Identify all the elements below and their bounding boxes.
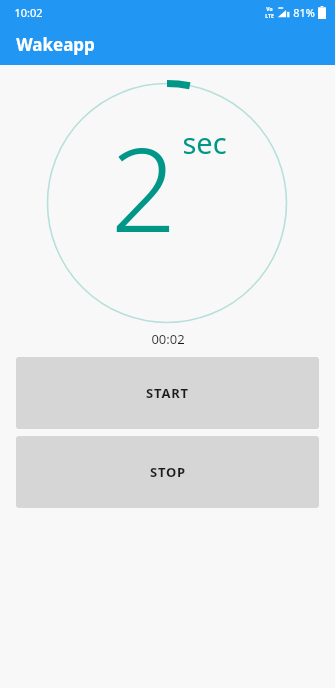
- button[interactable]: START: [16, 357, 319, 429]
- staticText: 10:02: [14, 5, 43, 20]
- staticText: STOP: [150, 463, 186, 481]
- staticText: START: [146, 384, 189, 402]
- staticText: 2: [110, 108, 177, 266]
- staticText: sec: [182, 123, 227, 162]
- staticText: Wakeapp: [16, 33, 95, 56]
- staticText: 81%: [293, 5, 315, 20]
- button[interactable]: STOP: [16, 436, 319, 508]
- staticText: Vo: [266, 6, 273, 13]
- staticText: 00:02: [151, 330, 185, 348]
- staticText: LTE: [265, 13, 274, 20]
